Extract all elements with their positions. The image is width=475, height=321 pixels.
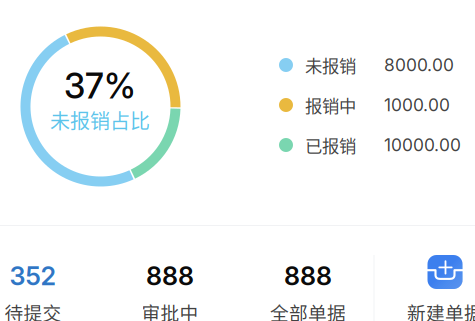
staticText: 352	[9, 261, 56, 291]
button[interactable]: 已报销	[279, 128, 475, 162]
staticText: 待提交	[4, 298, 61, 321]
button[interactable]: 未报销	[279, 48, 475, 82]
staticText: 全部单据	[270, 298, 346, 321]
staticText: 审批中	[141, 298, 198, 321]
staticText: 新建单据	[407, 298, 475, 321]
button[interactable]: 888	[248, 259, 368, 321]
staticText: 报销中	[305, 92, 356, 118]
staticText: 1000.00	[384, 94, 450, 115]
staticText: 10000.00	[384, 134, 461, 155]
button[interactable]: 新建单据	[385, 259, 475, 321]
staticText: 8000.00	[384, 54, 454, 75]
staticText: 未报销占比	[50, 105, 150, 134]
button[interactable]: 888	[110, 259, 230, 321]
button[interactable]: 352	[0, 259, 93, 321]
staticText: 888	[146, 261, 194, 291]
button[interactable]: 报销中	[279, 88, 475, 122]
staticText: 888	[284, 261, 332, 291]
staticText: 37%	[64, 65, 136, 107]
staticText: 未报销	[305, 52, 356, 78]
staticText: 已报销	[305, 132, 356, 158]
